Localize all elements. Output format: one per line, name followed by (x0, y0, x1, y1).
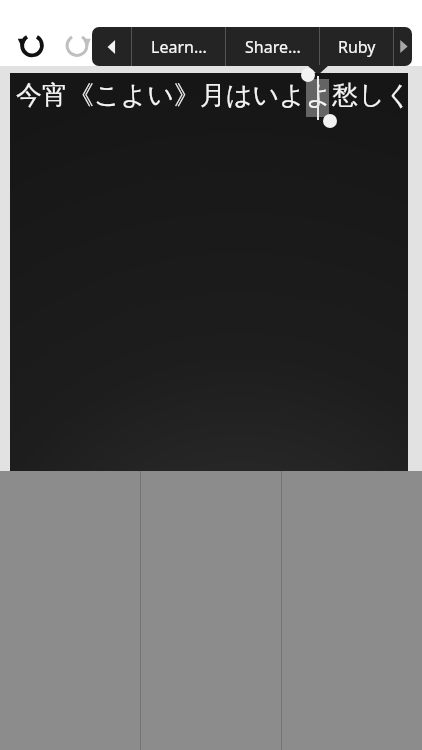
button[interactable]: Share... (226, 27, 319, 66)
staticText: Share... (245, 36, 301, 58)
button[interactable]: Ruby (320, 27, 393, 66)
staticText: Learn... (151, 36, 207, 58)
button[interactable]: Learn... (132, 27, 225, 66)
button[interactable]: Undo (10, 22, 54, 66)
button[interactable]: Next (394, 27, 412, 66)
staticText: Ruby (338, 36, 376, 58)
button[interactable]: Redo (55, 22, 99, 66)
staticText: 今宵《こよい》月はいよよ愁しく (16, 79, 412, 112)
button[interactable]: Previous (92, 27, 131, 66)
